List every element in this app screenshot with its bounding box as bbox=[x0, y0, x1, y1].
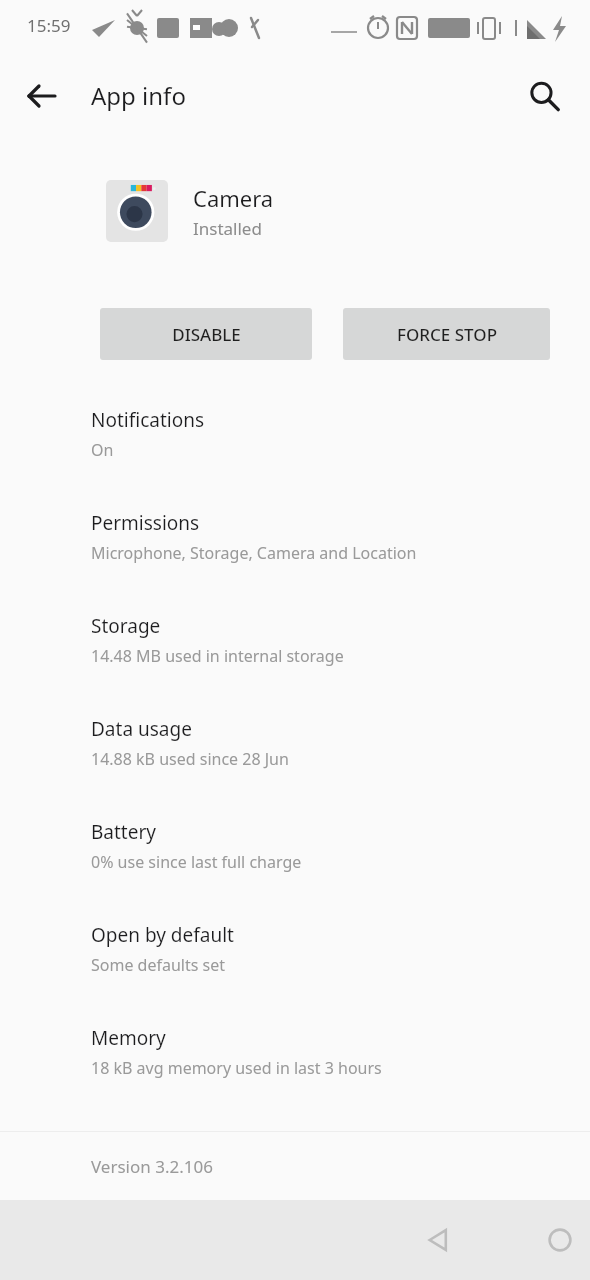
button[interactable]: DISABLE bbox=[100, 308, 312, 360]
staticText: Notifications bbox=[91, 407, 205, 433]
staticText: Camera bbox=[193, 183, 274, 213]
staticText: Installed bbox=[193, 217, 262, 240]
staticText: Memory bbox=[91, 1025, 166, 1051]
staticText: App info bbox=[91, 79, 186, 112]
staticText: 14.88 kB used since 28 Jun bbox=[91, 748, 289, 770]
staticText: Data usage bbox=[91, 716, 192, 742]
staticText: DISABLE bbox=[172, 323, 241, 346]
button[interactable]: Battery bbox=[0, 807, 590, 910]
button[interactable]: Recent apps bbox=[385, 1200, 590, 1280]
button[interactable]: Data usage bbox=[0, 704, 590, 807]
button[interactable]: Memory bbox=[0, 1013, 590, 1116]
staticText: 18 kB avg memory used in last 3 hours bbox=[91, 1057, 382, 1079]
button[interactable]: Storage bbox=[0, 601, 590, 704]
staticText: Some defaults set bbox=[91, 954, 226, 976]
button[interactable]: Back bbox=[143, 1200, 590, 1280]
staticText: FORCE STOP bbox=[397, 323, 497, 346]
button[interactable]: Back bbox=[16, 70, 68, 122]
staticText: Open by default bbox=[91, 922, 234, 948]
staticText: Version 3.2.106 bbox=[91, 1155, 213, 1178]
staticText: Storage bbox=[91, 613, 161, 639]
staticText: Permissions bbox=[91, 510, 200, 536]
staticText: 14.48 MB used in internal storage bbox=[91, 645, 344, 667]
staticText: Battery bbox=[91, 819, 156, 845]
button[interactable]: FORCE STOP bbox=[343, 308, 550, 360]
staticText: 0% use since last full charge bbox=[91, 851, 302, 873]
button[interactable]: Permissions bbox=[0, 498, 590, 601]
button[interactable]: Search bbox=[518, 70, 570, 122]
staticText: Microphone, Storage, Camera and Location bbox=[91, 542, 417, 564]
button[interactable]: Notifications bbox=[0, 395, 590, 498]
button[interactable]: Home bbox=[265, 1200, 590, 1280]
staticText: On bbox=[91, 439, 114, 461]
button[interactable]: Open by default bbox=[0, 910, 590, 1013]
staticText: 15:59 bbox=[27, 14, 71, 37]
